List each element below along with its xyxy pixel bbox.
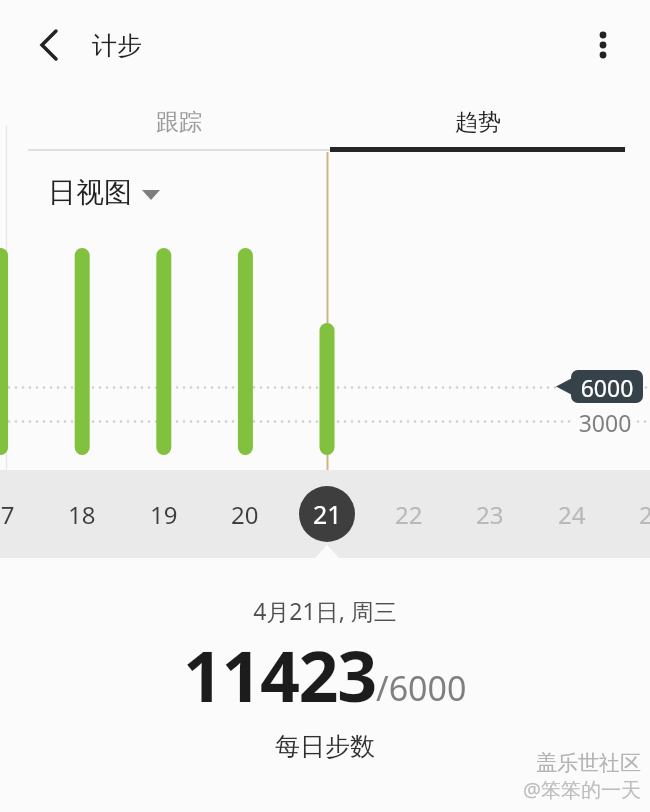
staticText: 17 bbox=[0, 498, 15, 531]
staticText: 18 bbox=[68, 498, 96, 531]
button[interactable] bbox=[30, 27, 66, 63]
staticText: 11423 bbox=[183, 627, 376, 722]
button[interactable]: 19 bbox=[124, 486, 204, 542]
staticText: 6000 bbox=[571, 372, 643, 403]
staticText: 计步 bbox=[92, 30, 142, 61]
staticText: 盖乐世社区 bbox=[536, 750, 641, 776]
button[interactable]: 日视图 bbox=[48, 175, 162, 210]
button[interactable]: 22 bbox=[369, 486, 449, 542]
staticText: /6000 bbox=[376, 665, 467, 711]
staticText: 19 bbox=[150, 498, 178, 531]
button[interactable]: 跟踪 bbox=[28, 100, 330, 144]
button[interactable]: 24 bbox=[532, 486, 612, 542]
staticText: 25 bbox=[639, 498, 650, 531]
staticText: 每日步数 bbox=[0, 731, 650, 762]
button[interactable]: 23 bbox=[450, 486, 530, 542]
staticText: 22 bbox=[395, 498, 423, 531]
staticText: 21 bbox=[313, 497, 342, 531]
button[interactable]: 趋势 bbox=[330, 100, 625, 144]
button[interactable] bbox=[585, 27, 621, 63]
staticText: 趋势 bbox=[455, 108, 501, 137]
staticText: 23 bbox=[476, 498, 504, 531]
staticText: 日视图 bbox=[48, 175, 132, 210]
button[interactable]: 20 bbox=[205, 486, 285, 542]
staticText: 4月21日, 周三 bbox=[0, 595, 650, 626]
button[interactable]: 21 bbox=[299, 486, 355, 542]
button[interactable]: 25 bbox=[613, 486, 650, 542]
button[interactable]: 18 bbox=[42, 486, 122, 542]
staticText: 跟踪 bbox=[156, 108, 202, 137]
staticText: 20 bbox=[231, 498, 259, 531]
staticText: 24 bbox=[558, 498, 586, 531]
staticText: @笨笨的一天 bbox=[523, 776, 641, 803]
button[interactable]: 17 bbox=[0, 486, 41, 542]
staticText: 3000 bbox=[569, 407, 641, 438]
